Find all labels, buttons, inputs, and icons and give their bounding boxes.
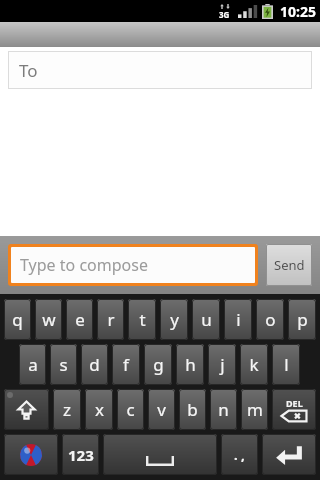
button[interactable]: l [272, 344, 300, 385]
button[interactable]: f [112, 344, 140, 385]
staticText: v [157, 398, 166, 421]
button[interactable]: t [128, 299, 156, 340]
staticText: r [107, 308, 115, 331]
staticText: f [123, 353, 129, 376]
staticText: DEL [286, 397, 303, 409]
staticText: . , [234, 446, 245, 464]
button[interactable]: To [8, 51, 312, 89]
staticText: 10:25 [280, 2, 316, 21]
staticText: c [126, 398, 135, 421]
staticText: i [236, 308, 241, 331]
button[interactable]: Send [266, 244, 312, 286]
button[interactable]: p [288, 299, 316, 340]
staticText: m [247, 398, 263, 421]
button[interactable]: q [4, 299, 31, 340]
button[interactable]: s [50, 344, 77, 385]
staticText: l [284, 353, 289, 376]
staticText: To [19, 59, 38, 82]
button[interactable]: Type to compose [11, 247, 255, 283]
button[interactable]: 123 [62, 434, 99, 475]
staticText: Send [274, 256, 305, 274]
button[interactable]: g [144, 344, 172, 385]
staticText: u [201, 308, 212, 331]
button[interactable]: k [240, 344, 268, 385]
staticText: n [218, 398, 229, 421]
button[interactable]: d [81, 344, 108, 385]
staticText: p [297, 308, 308, 331]
staticText: q [12, 308, 23, 331]
staticText: d [89, 353, 100, 376]
button[interactable]: Delete [272, 389, 316, 430]
button[interactable]: c [117, 389, 144, 430]
button[interactable]: a [19, 344, 46, 385]
button[interactable]: i [224, 299, 252, 340]
button[interactable]: n [210, 389, 237, 430]
staticText: h [185, 353, 196, 376]
staticText: x [95, 398, 104, 421]
button[interactable]: r [97, 299, 124, 340]
button[interactable]: b [179, 389, 206, 430]
button[interactable]: Switch language [4, 434, 58, 475]
staticText: j [220, 353, 225, 376]
staticText: 123 [68, 445, 94, 465]
staticText: o [265, 308, 276, 331]
staticText: b [187, 398, 198, 421]
staticText: g [153, 353, 164, 376]
staticText: z [63, 398, 71, 421]
staticText: y [170, 308, 179, 331]
button[interactable]: Space [103, 434, 217, 475]
button[interactable]: e [66, 299, 93, 340]
staticText: k [249, 353, 259, 376]
button[interactable]: y [160, 299, 188, 340]
staticText: Type to compose [20, 254, 148, 276]
button[interactable]: w [35, 299, 62, 340]
button[interactable]: z [53, 389, 81, 430]
button[interactable]: x [85, 389, 113, 430]
staticText: a [28, 353, 38, 376]
staticText: w [42, 308, 56, 331]
button[interactable]: v [148, 389, 175, 430]
button[interactable]: . , [221, 434, 258, 475]
button[interactable]: Enter [262, 434, 316, 475]
button[interactable]: h [176, 344, 204, 385]
staticText: e [75, 308, 85, 331]
button[interactable]: m [241, 389, 268, 430]
staticText: t [139, 308, 146, 331]
staticText: 3G [219, 9, 230, 20]
button[interactable]: o [256, 299, 284, 340]
button[interactable]: Shift [4, 389, 49, 430]
staticText: s [59, 353, 68, 376]
button[interactable]: u [192, 299, 220, 340]
button[interactable]: j [208, 344, 236, 385]
